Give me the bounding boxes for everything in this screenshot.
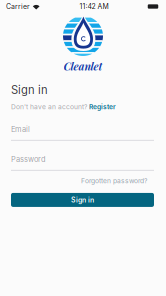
staticText: Carrier [6, 2, 30, 11]
staticText: Don't have an account? [11, 103, 89, 111]
button[interactable]: Forgotten password? [81, 177, 154, 185]
staticText: 11:42 AM [79, 2, 108, 11]
staticText: Forgotten password? [81, 177, 147, 185]
staticText: Email [11, 125, 30, 134]
staticText: Password [11, 155, 46, 164]
button[interactable]: Register [89, 103, 116, 111]
staticText: Sign in [11, 83, 48, 97]
staticText: Register [89, 103, 116, 111]
staticText: Cleanlet [63, 59, 102, 73]
button[interactable]: Sign in [11, 193, 154, 207]
staticText: Sign in [71, 196, 94, 204]
